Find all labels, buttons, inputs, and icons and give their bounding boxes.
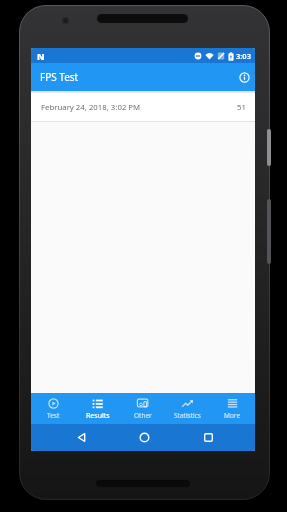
staticText: 51 <box>237 102 246 113</box>
button[interactable] <box>203 432 214 443</box>
staticText: Test <box>47 411 60 420</box>
staticText: FPS Test <box>40 70 79 84</box>
staticText: February 24, 2018, 3:02 PM <box>41 102 141 113</box>
staticText: Results <box>86 411 110 421</box>
button[interactable]: Test <box>31 393 75 424</box>
button[interactable] <box>76 432 87 443</box>
staticText: Statistics <box>174 411 201 420</box>
staticText: N <box>37 50 45 62</box>
staticText: 3:03 <box>236 51 251 61</box>
button[interactable]: February 24, 2018, 3:02 PM <box>31 91 255 121</box>
button[interactable]: Other <box>120 393 165 424</box>
button[interactable] <box>139 432 150 443</box>
button[interactable]: Results <box>75 393 120 424</box>
button[interactable]: Statistics <box>165 393 210 424</box>
staticText: Other <box>134 411 152 420</box>
staticText: More <box>224 411 241 420</box>
button[interactable] <box>238 71 250 83</box>
button[interactable]: More <box>210 393 255 424</box>
